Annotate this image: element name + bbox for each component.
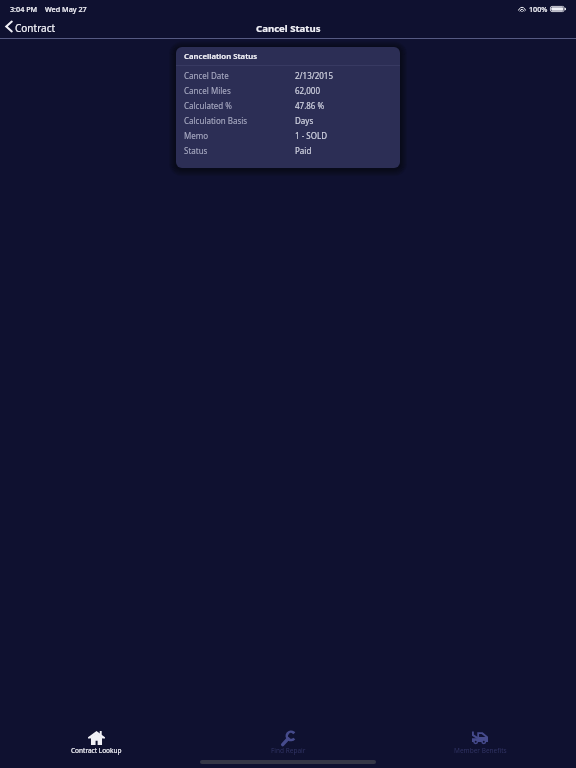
staticText: 3:04 PM [10,4,38,14]
staticText: Cancel Status [256,22,321,35]
staticText: Contract [15,21,56,35]
staticText: Status [184,145,208,156]
staticText: Paid [295,145,312,156]
other: Back [5,20,13,33]
staticText: Contract Lookup [71,746,122,755]
staticText: Calculation Basis [184,115,248,126]
staticText: 1 - SOLD [295,130,327,141]
staticText: Cancel Date [184,70,229,81]
staticText: Days [295,115,314,126]
staticText: 100% [529,4,548,14]
staticText: Cancellation Status [184,51,258,62]
staticText: 62,000 [295,85,321,96]
staticText: Member Benefits [454,746,507,755]
staticText: 2/13/2015 [295,70,333,81]
staticText: Memo [184,130,209,141]
staticText: 47.86 % [295,100,325,111]
button[interactable]: Contract Lookup [0,722,192,756]
staticText: Calculated % [184,100,232,111]
button[interactable]: Member Benefits [384,722,576,756]
staticText: Wed May 27 [45,4,87,14]
staticText: Cancel Miles [184,85,231,96]
button[interactable]: Find Repair [192,722,384,756]
staticText: Find Repair [271,746,306,755]
button[interactable]: Back [5,18,56,38]
